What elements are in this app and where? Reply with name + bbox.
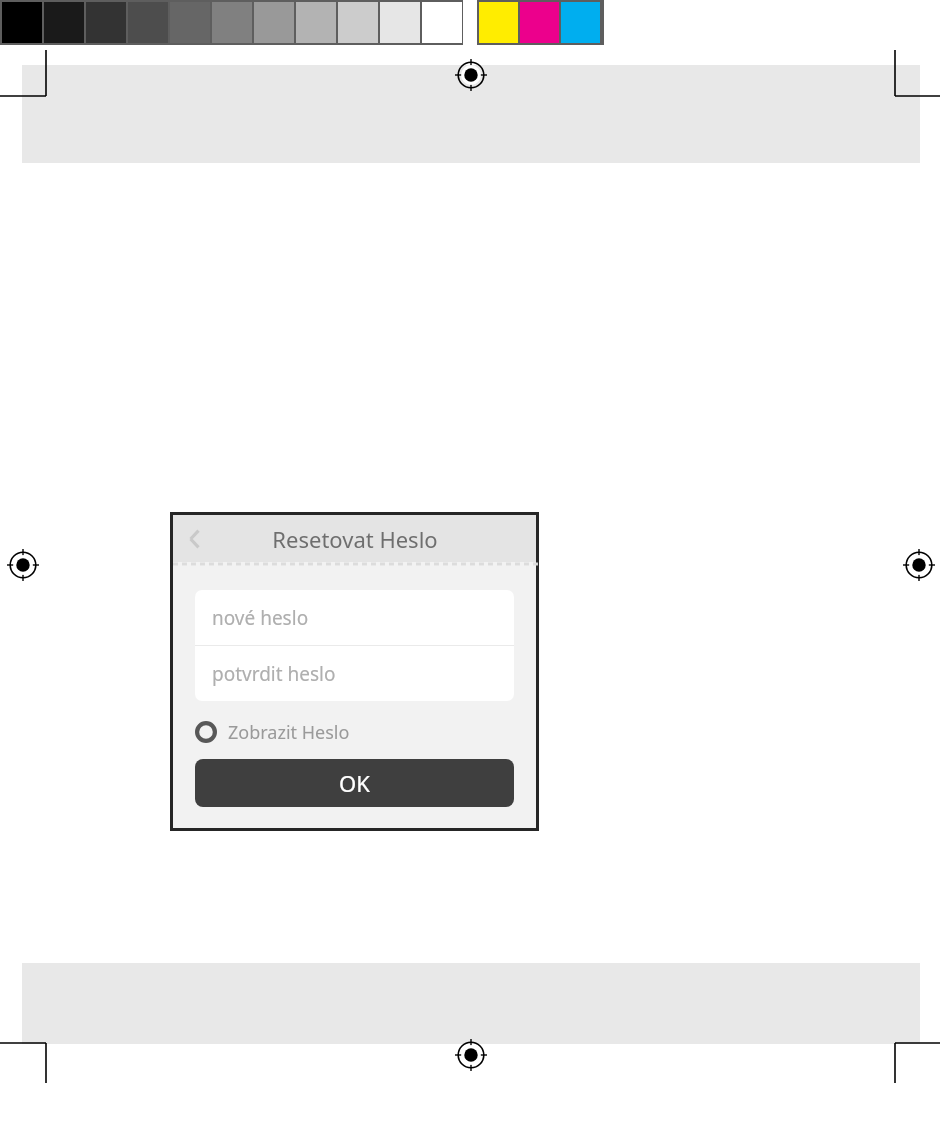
staticText: nové heslo xyxy=(212,605,309,631)
button[interactable]: Back xyxy=(173,517,217,561)
staticText: Zobrazit Heslo xyxy=(228,720,350,745)
staticText: potvrdit heslo xyxy=(212,661,336,687)
button[interactable]: potvrdit heslo xyxy=(195,646,514,701)
staticText: Resetovat Heslo xyxy=(272,524,438,554)
button[interactable]: Zobrazit Heslo xyxy=(195,714,514,750)
button[interactable]: nové heslo xyxy=(195,590,514,645)
button[interactable]: OK xyxy=(195,759,514,807)
staticText: OK xyxy=(339,768,370,798)
